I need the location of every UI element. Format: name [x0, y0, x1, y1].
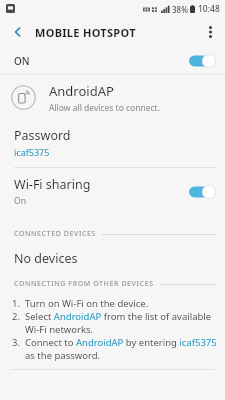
- staticText: 3.: [12, 336, 25, 349]
- staticText: Password: [14, 127, 71, 144]
- staticText: ON: [14, 54, 30, 68]
- staticText: AndroidAP: [49, 82, 114, 100]
- staticText: Allow all devices to connect.: [49, 102, 160, 114]
- button[interactable]: ON: [0, 47, 225, 74]
- staticText: CONNECTING FROM OTHER DEVICES: [14, 279, 154, 289]
- staticText: Select AndroidAP from the list of availa…: [25, 310, 217, 336]
- staticText: On: [14, 195, 26, 207]
- staticText: MOBILE HOTSPOT: [35, 25, 136, 40]
- button[interactable]: Navigate up: [6, 20, 30, 44]
- button[interactable]: Wi-Fi sharing: [0, 168, 225, 216]
- staticText: 2.: [12, 310, 25, 323]
- button[interactable]: More options: [198, 20, 222, 44]
- button[interactable]: No devices: [0, 242, 225, 274]
- staticText: CONNECTED DEVICES: [14, 229, 96, 239]
- button[interactable]: Password: [0, 120, 225, 167]
- button[interactable]: AndroidAP: [0, 75, 225, 120]
- staticText: 10:48: [198, 3, 220, 15]
- staticText: Connect to AndroidAP by entering icaf537…: [25, 336, 217, 362]
- staticText: No devices: [14, 250, 78, 267]
- staticText: Wi-Fi sharing: [14, 176, 91, 193]
- staticText: 1.: [12, 297, 25, 310]
- staticText: Turn on Wi-Fi on the device.: [25, 297, 149, 310]
- staticText: icaf5375: [14, 146, 50, 158]
- staticText: 38%: [172, 4, 188, 15]
